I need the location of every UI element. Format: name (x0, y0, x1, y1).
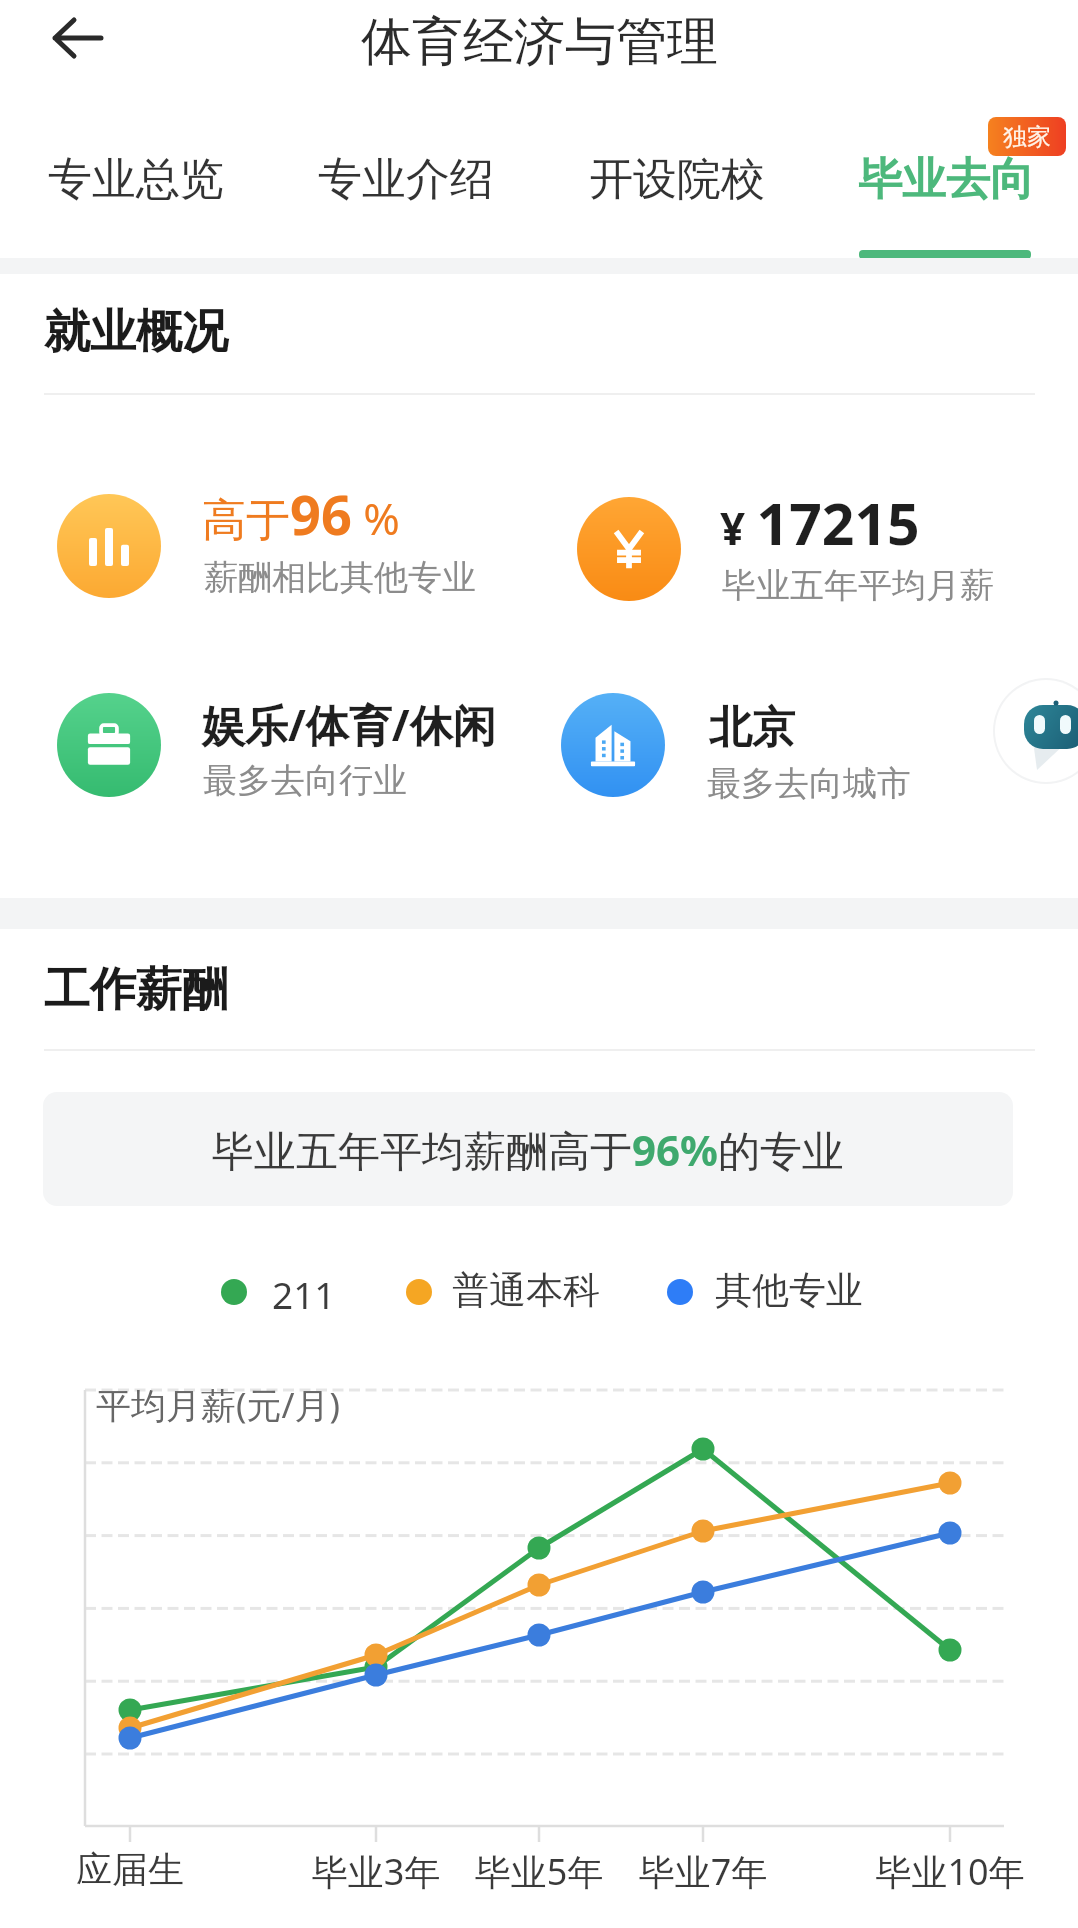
staticText: 独家 (1003, 122, 1051, 152)
button[interactable]: 娱乐/体育/休闲 (57, 693, 496, 797)
button[interactable]: Back (40, 0, 116, 76)
staticText: 工作薪酬 (44, 961, 228, 1019)
staticText: 平均月薪(元/月) (96, 1381, 341, 1429)
button[interactable]: 毕业五年平均薪酬高于96%的专业 (43, 1092, 1013, 1206)
button[interactable]: AI chat assistant (990, 675, 1078, 787)
staticText: 娱乐/体育/休闲 (202, 695, 496, 754)
staticText: 就业概况 (44, 303, 228, 361)
button[interactable]: 专业介绍 (272, 109, 540, 249)
staticText: 毕业五年平均月薪 (722, 564, 994, 607)
staticText: 毕业7年 (553, 1847, 853, 1896)
staticText: 专业介绍 (318, 152, 494, 207)
staticText: 专业总览 (48, 152, 224, 207)
staticText: 普通本科 (452, 1267, 600, 1314)
staticText: 薪酬相比其他专业 (204, 556, 476, 599)
staticText: 毕业10年 (800, 1847, 1078, 1896)
staticText: 高于96 % (202, 477, 400, 551)
staticText: 开设院校 (589, 152, 765, 207)
staticText: 体育经济与管理 (361, 10, 718, 74)
staticText: ¥ 17215 (720, 484, 920, 562)
staticText: 北京 (709, 701, 795, 755)
button[interactable]: 高于96 % (57, 494, 474, 598)
staticText: 毕业3年 (226, 1847, 526, 1896)
staticText: 最多去向行业 (203, 759, 407, 802)
staticText: 毕业5年 (389, 1847, 689, 1896)
staticText: 毕业五年平均薪酬高于96%的专业 (212, 1121, 844, 1178)
staticText: 应届生 (0, 1847, 280, 1892)
staticText: 毕业去向 (858, 152, 1034, 207)
staticText: 其他专业 (715, 1267, 863, 1314)
button[interactable]: ¥ 17215 (577, 497, 992, 601)
staticText: 211 (272, 1269, 336, 1319)
button[interactable]: 毕业去向 (812, 109, 1078, 249)
staticText: 最多去向城市 (707, 762, 911, 805)
button[interactable]: 开设院校 (543, 109, 811, 249)
button[interactable]: 专业总览 (2, 109, 270, 249)
button[interactable]: 北京 (561, 693, 913, 797)
